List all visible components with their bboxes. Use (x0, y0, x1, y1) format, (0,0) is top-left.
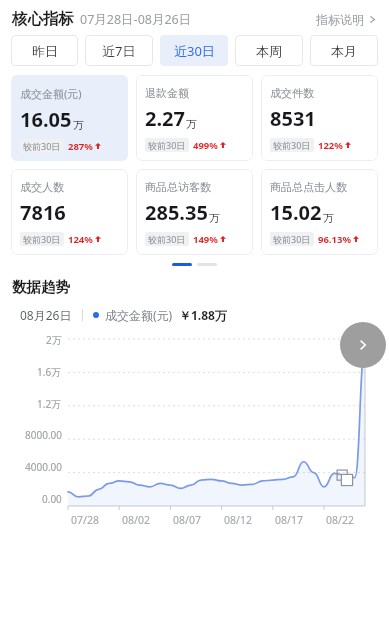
staticText: 较前30日 (273, 233, 311, 245)
staticText: 商品总访客数 (145, 180, 211, 194)
staticText: 07月28日-08月26日 (80, 11, 192, 28)
button[interactable]: 退款金额 (136, 75, 253, 161)
staticText: 近7日 (102, 42, 136, 60)
staticText: 万 (73, 118, 84, 132)
staticText: 287% (68, 140, 93, 153)
staticText: ￥1.88万 (179, 307, 227, 323)
staticText: 08/17 (275, 513, 303, 527)
staticText: 商品总点击人数 (270, 180, 347, 194)
staticText: 较前30日 (273, 139, 311, 151)
staticText: 285.35 (145, 199, 208, 226)
staticText: 万 (323, 211, 334, 225)
button[interactable]: 昨日 (11, 35, 78, 66)
staticText: 数据趋势 (12, 278, 70, 296)
staticText: 15.02 (270, 199, 322, 226)
staticText: 成交人数 (20, 180, 64, 194)
staticText: 万 (209, 211, 220, 225)
button[interactable]: 成交金额(元) (11, 75, 128, 161)
button[interactable] (172, 263, 192, 266)
staticText: 退款金额 (145, 86, 189, 100)
staticText: 较前30日 (148, 139, 186, 151)
button[interactable]: 本月 (310, 35, 378, 66)
staticText: 499% (193, 139, 218, 152)
button[interactable]: Next page (340, 322, 386, 368)
button[interactable]: 商品总访客数 (136, 169, 253, 255)
staticText: 2万 (46, 333, 62, 347)
staticText: 08/22 (326, 513, 354, 527)
staticText: 近30日 (174, 42, 215, 60)
staticText: 0.00 (42, 492, 62, 506)
staticText: 16.05 (20, 106, 72, 133)
staticText: 较前30日 (23, 140, 61, 152)
staticText: 08/02 (122, 513, 150, 527)
button[interactable]: 指标说明 (316, 12, 377, 27)
staticText: 8000.00 (25, 428, 62, 442)
staticText: 7816 (20, 199, 66, 226)
staticText: 149% (193, 233, 218, 246)
staticText: 成交金额(元) (105, 307, 173, 323)
staticText: 昨日 (32, 43, 58, 59)
staticText: 4000.00 (25, 460, 62, 474)
button[interactable] (197, 263, 217, 266)
button[interactable]: 商品总点击人数 (261, 169, 378, 255)
staticText: 万 (186, 117, 197, 131)
staticText: 96.13% (318, 233, 351, 246)
staticText: 07/28 (71, 513, 99, 527)
staticText: 指标说明 (316, 12, 364, 27)
button[interactable]: 近30日 (160, 35, 228, 66)
button[interactable]: 近7日 (85, 35, 153, 66)
button[interactable]: 成交人数 (11, 169, 128, 255)
button[interactable]: 本周 (235, 35, 303, 66)
staticText: 1.2万 (37, 397, 62, 411)
staticText: 核心指标 (12, 9, 74, 29)
staticText: 本周 (256, 43, 282, 59)
staticText: 124% (68, 233, 93, 246)
staticText: 1.6万 (37, 365, 62, 379)
button[interactable]: 成交件数 (261, 75, 378, 161)
staticText: 本月 (331, 43, 357, 59)
staticText: 较前30日 (148, 233, 186, 245)
staticText: 08月26日 (20, 307, 72, 323)
staticText: 2.27 (145, 105, 185, 132)
staticText: 08/12 (224, 513, 252, 527)
staticText: 成交件数 (270, 86, 314, 100)
button[interactable]: Copy (336, 469, 354, 487)
staticText: 成交金额(元) (20, 86, 82, 101)
staticText: 8531 (270, 105, 316, 132)
staticText: 122% (318, 139, 343, 152)
staticText: 08/07 (173, 513, 201, 527)
staticText: 较前30日 (23, 233, 61, 245)
